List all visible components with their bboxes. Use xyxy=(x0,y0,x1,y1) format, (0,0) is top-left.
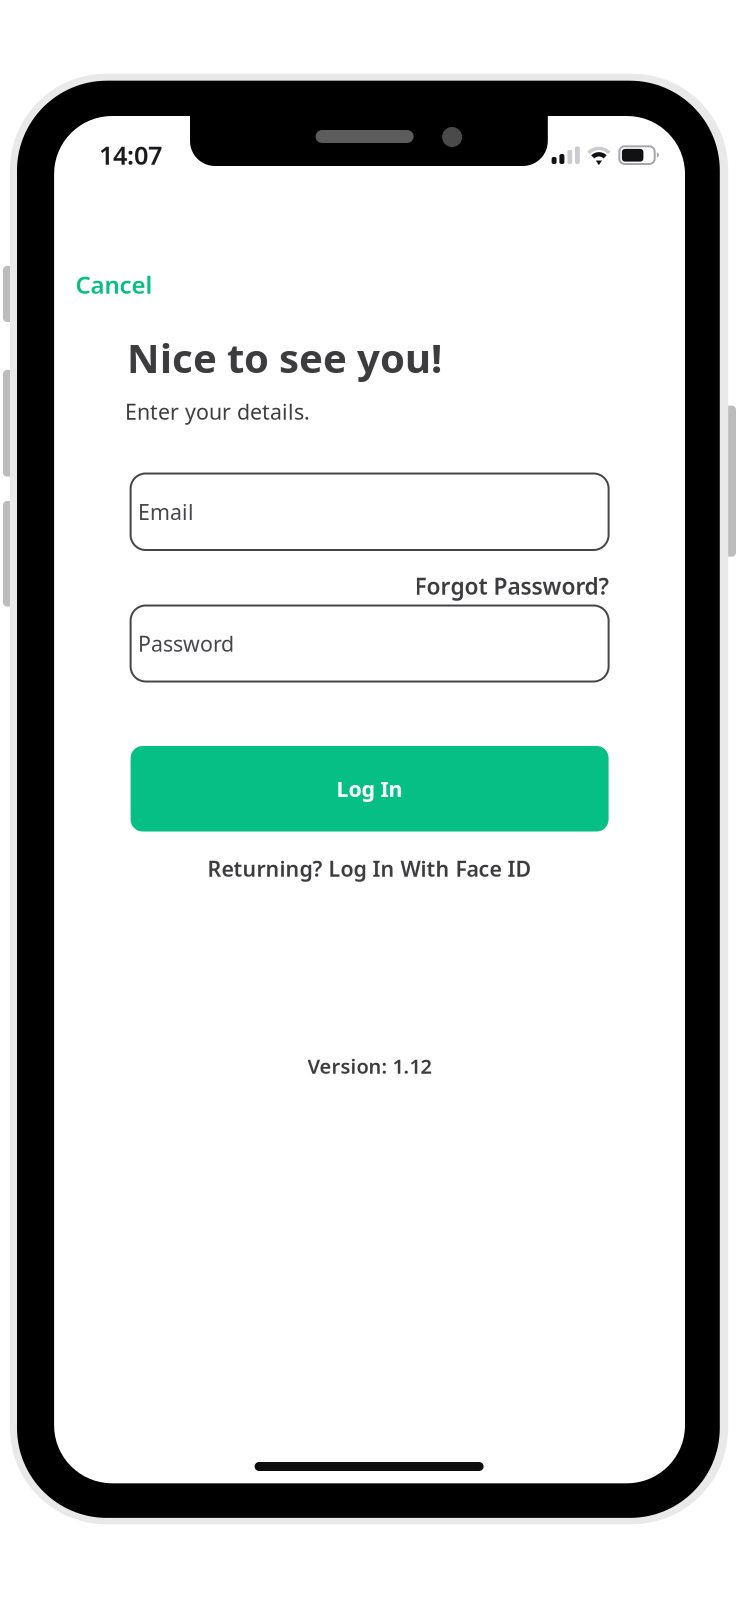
staticText: Log In xyxy=(337,775,403,803)
staticText: Email xyxy=(138,498,194,526)
staticText: Enter your details. xyxy=(125,397,310,426)
staticText: Version: 1.12 xyxy=(308,1053,432,1079)
staticText: Forgot Password? xyxy=(415,571,609,601)
button[interactable]: Forgot Password? xyxy=(349,571,609,601)
button[interactable]: Log In xyxy=(131,746,609,831)
staticText: Cancel xyxy=(76,269,153,300)
staticText: Returning? Log In With Face ID xyxy=(208,854,532,883)
button[interactable]: Returning? Log In With Face ID xyxy=(131,853,609,883)
button[interactable]: Cancel xyxy=(76,268,196,300)
staticText: Password xyxy=(138,629,234,658)
staticText: 14:07 xyxy=(99,138,162,172)
staticText: Nice to see you! xyxy=(127,331,442,384)
